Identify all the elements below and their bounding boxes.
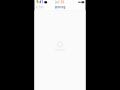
staticText: Earning [54, 5, 65, 9]
button[interactable]: Back [35, 4, 44, 10]
staticText: Back [38, 5, 43, 9]
staticText: Jul 26 [55, 0, 64, 4]
staticText: 9:41 [36, 0, 43, 4]
